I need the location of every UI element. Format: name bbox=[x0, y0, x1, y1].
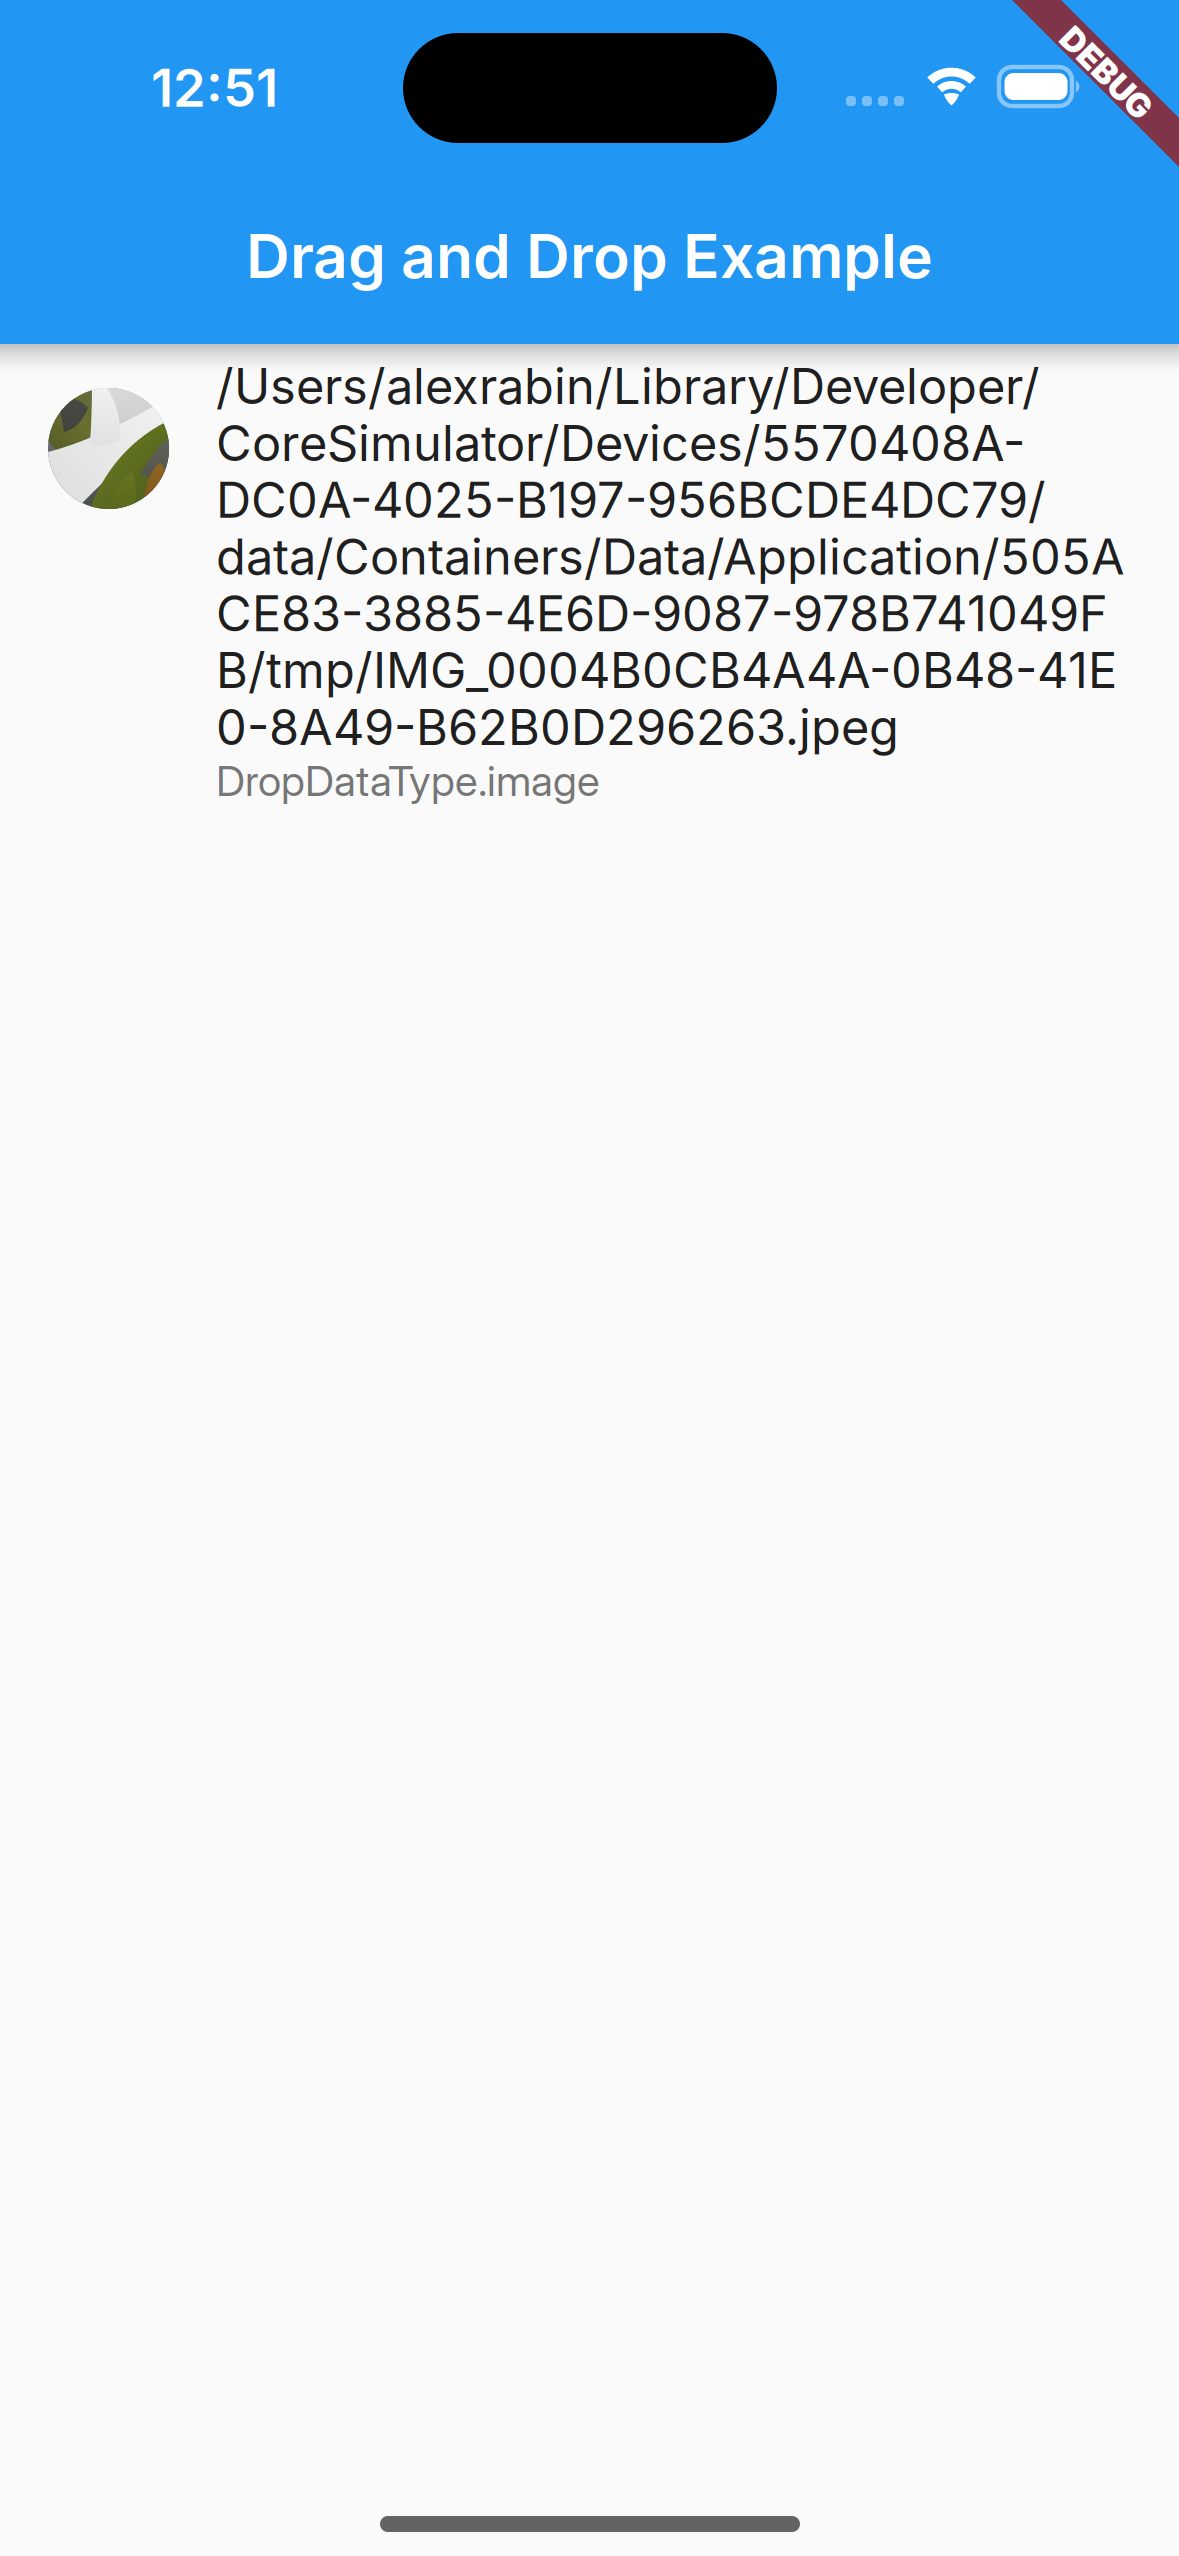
button[interactable]: /Users/alexrabin/Library/Developer/ bbox=[0, 344, 1179, 830]
staticText: 12:51 bbox=[151, 56, 278, 119]
staticText: /Users/alexrabin/Library/Developer/ bbox=[216, 357, 1040, 416]
staticText: B/tmp/IMG_0004B0CB4A4A-0B48-41E bbox=[216, 641, 1117, 700]
staticText: DC0A-4025-B197-956BCDE4DC79/ bbox=[216, 470, 1046, 529]
staticText: DropDataType.image bbox=[216, 755, 600, 806]
staticText: CoreSimulator/Devices/5570408A- bbox=[216, 414, 1025, 473]
staticText: data/Containers/Data/Application/505A bbox=[216, 527, 1125, 586]
staticText: DEBUG bbox=[1049, 53, 1164, 93]
staticText: 0-8A49-B62B0D296263.jpeg bbox=[216, 698, 899, 757]
staticText: CE83-3885-4E6D-9087-978B741049F bbox=[216, 584, 1108, 643]
staticText: Drag and Drop Example bbox=[246, 219, 933, 293]
